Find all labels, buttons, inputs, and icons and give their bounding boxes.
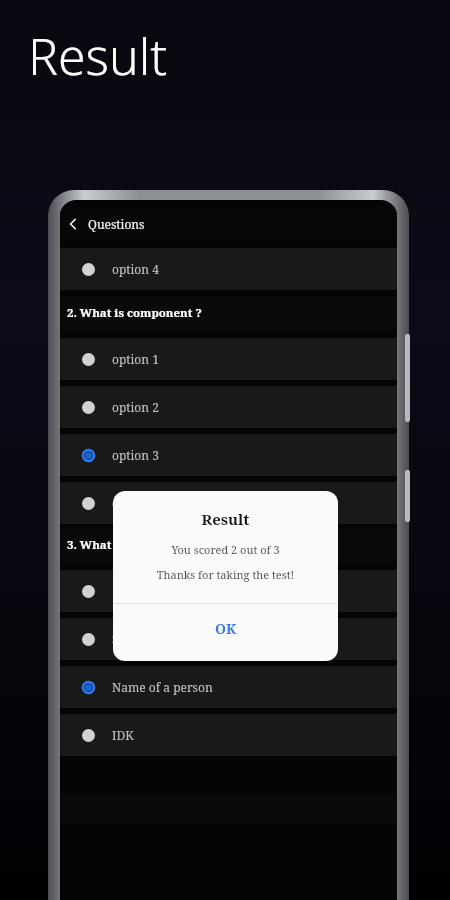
button[interactable]: option 4 [60, 248, 397, 290]
staticText: option 4 [112, 495, 159, 511]
button[interactable]: OK [113, 604, 338, 653]
staticText: option 4 [112, 261, 159, 277]
staticText: Thanks for taking the test! [113, 567, 338, 582]
staticText: Something [112, 631, 174, 647]
button[interactable]: 2. What is component ? [60, 296, 397, 330]
button[interactable]: 3. What ... [60, 528, 397, 562]
staticText: option 2 [112, 399, 159, 415]
staticText: Name of a person [112, 679, 213, 695]
staticText: Result [113, 509, 338, 529]
button[interactable]: Back [60, 211, 86, 237]
staticText: option 3 [112, 447, 159, 463]
staticText: OK [215, 619, 237, 638]
staticText: You scored 2 out of 3 [113, 542, 338, 557]
button[interactable]: option 3 [60, 434, 397, 476]
staticText: Result [28, 22, 168, 90]
button[interactable]: option 4 [60, 482, 397, 524]
button[interactable] [60, 570, 397, 612]
button[interactable]: IDK [60, 714, 397, 756]
staticText: 2. What is component ? [67, 305, 202, 321]
button[interactable]: Something [60, 618, 397, 660]
button[interactable]: option 2 [60, 386, 397, 428]
staticText: option 1 [112, 351, 159, 367]
button[interactable]: option 1 [60, 338, 397, 380]
staticText: IDK [112, 727, 134, 743]
staticText: Questions [88, 216, 145, 232]
staticText: 3. What ... [67, 537, 125, 553]
button[interactable]: Name of a person [60, 666, 397, 708]
